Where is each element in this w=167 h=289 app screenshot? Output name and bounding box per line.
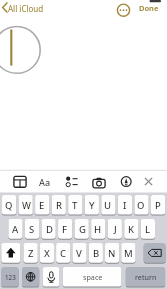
- staticText: Q: [5, 199, 13, 212]
- button[interactable]: K: [124, 219, 138, 239]
- button[interactable]: A: [8, 219, 22, 239]
- staticText: P: [155, 199, 161, 212]
- staticText: V: [76, 247, 82, 260]
- staticText: W: [22, 199, 31, 212]
- button[interactable]: [43, 267, 60, 287]
- staticText: All iCloud: [8, 3, 44, 14]
- button[interactable]: J: [108, 219, 122, 239]
- button[interactable]: [1, 243, 20, 263]
- button[interactable]: P: [151, 195, 165, 215]
- button[interactable]: H: [91, 219, 105, 239]
- staticText: return: [135, 272, 157, 282]
- staticText: Y: [89, 199, 95, 212]
- staticText: B: [93, 247, 100, 260]
- staticText: Aa: [39, 176, 51, 188]
- button[interactable]: W: [19, 195, 33, 215]
- button[interactable]: [119, 174, 134, 189]
- button[interactable]: [12, 174, 28, 189]
- staticText: H: [94, 223, 102, 236]
- staticText: K: [128, 223, 135, 236]
- staticText: I: [123, 199, 127, 212]
- button[interactable]: 123: [2, 267, 19, 287]
- staticText: 123: [5, 273, 16, 282]
- button[interactable]: [116, 3, 131, 18]
- button[interactable]: R: [52, 195, 66, 215]
- button[interactable]: return: [126, 267, 165, 287]
- button[interactable]: Done: [135, 2, 163, 14]
- button[interactable]: [90, 174, 107, 189]
- button[interactable]: C: [56, 243, 70, 263]
- button[interactable]: Q: [2, 195, 16, 215]
- staticText: J: [114, 223, 117, 236]
- button[interactable]: All iCloud: [8, 2, 53, 14]
- button[interactable]: [22, 267, 39, 287]
- button[interactable]: E: [35, 195, 49, 215]
- button[interactable]: Aa: [37, 176, 53, 188]
- staticText: Done: [139, 3, 159, 13]
- button[interactable]: I: [118, 195, 132, 215]
- button[interactable]: [63, 174, 80, 189]
- staticText: S: [29, 223, 35, 236]
- staticText: X: [44, 247, 50, 260]
- button[interactable]: [141, 174, 155, 189]
- button[interactable]: [144, 243, 166, 263]
- button[interactable]: space: [63, 267, 122, 287]
- button[interactable]: M: [121, 243, 135, 263]
- button[interactable]: U: [101, 195, 115, 215]
- staticText: D: [46, 223, 53, 236]
- staticText: T: [72, 199, 78, 212]
- button[interactable]: S: [25, 219, 39, 239]
- staticText: space: [83, 272, 103, 282]
- button[interactable]: X: [40, 243, 54, 263]
- staticText: A: [12, 223, 19, 236]
- staticText: O: [137, 199, 145, 212]
- staticText: F: [62, 223, 68, 236]
- button[interactable]: L: [141, 219, 155, 239]
- staticText: G: [79, 223, 86, 236]
- button[interactable]: D: [42, 219, 56, 239]
- button[interactable]: G: [75, 219, 89, 239]
- staticText: L: [145, 223, 151, 236]
- button[interactable]: [0, 0, 8, 15]
- button[interactable]: O: [134, 195, 148, 215]
- button[interactable]: N: [105, 243, 119, 263]
- staticText: R: [56, 199, 63, 212]
- staticText: U: [104, 199, 112, 212]
- staticText: C: [60, 247, 67, 260]
- button[interactable]: T: [68, 195, 82, 215]
- button[interactable]: B: [89, 243, 103, 263]
- staticText: Z: [28, 247, 34, 260]
- button[interactable]: Y: [85, 195, 99, 215]
- staticText: M: [124, 247, 133, 260]
- button[interactable]: V: [72, 243, 86, 263]
- button[interactable]: Z: [24, 243, 38, 263]
- button[interactable]: F: [58, 219, 72, 239]
- staticText: N: [108, 247, 116, 260]
- staticText: E: [39, 199, 45, 212]
